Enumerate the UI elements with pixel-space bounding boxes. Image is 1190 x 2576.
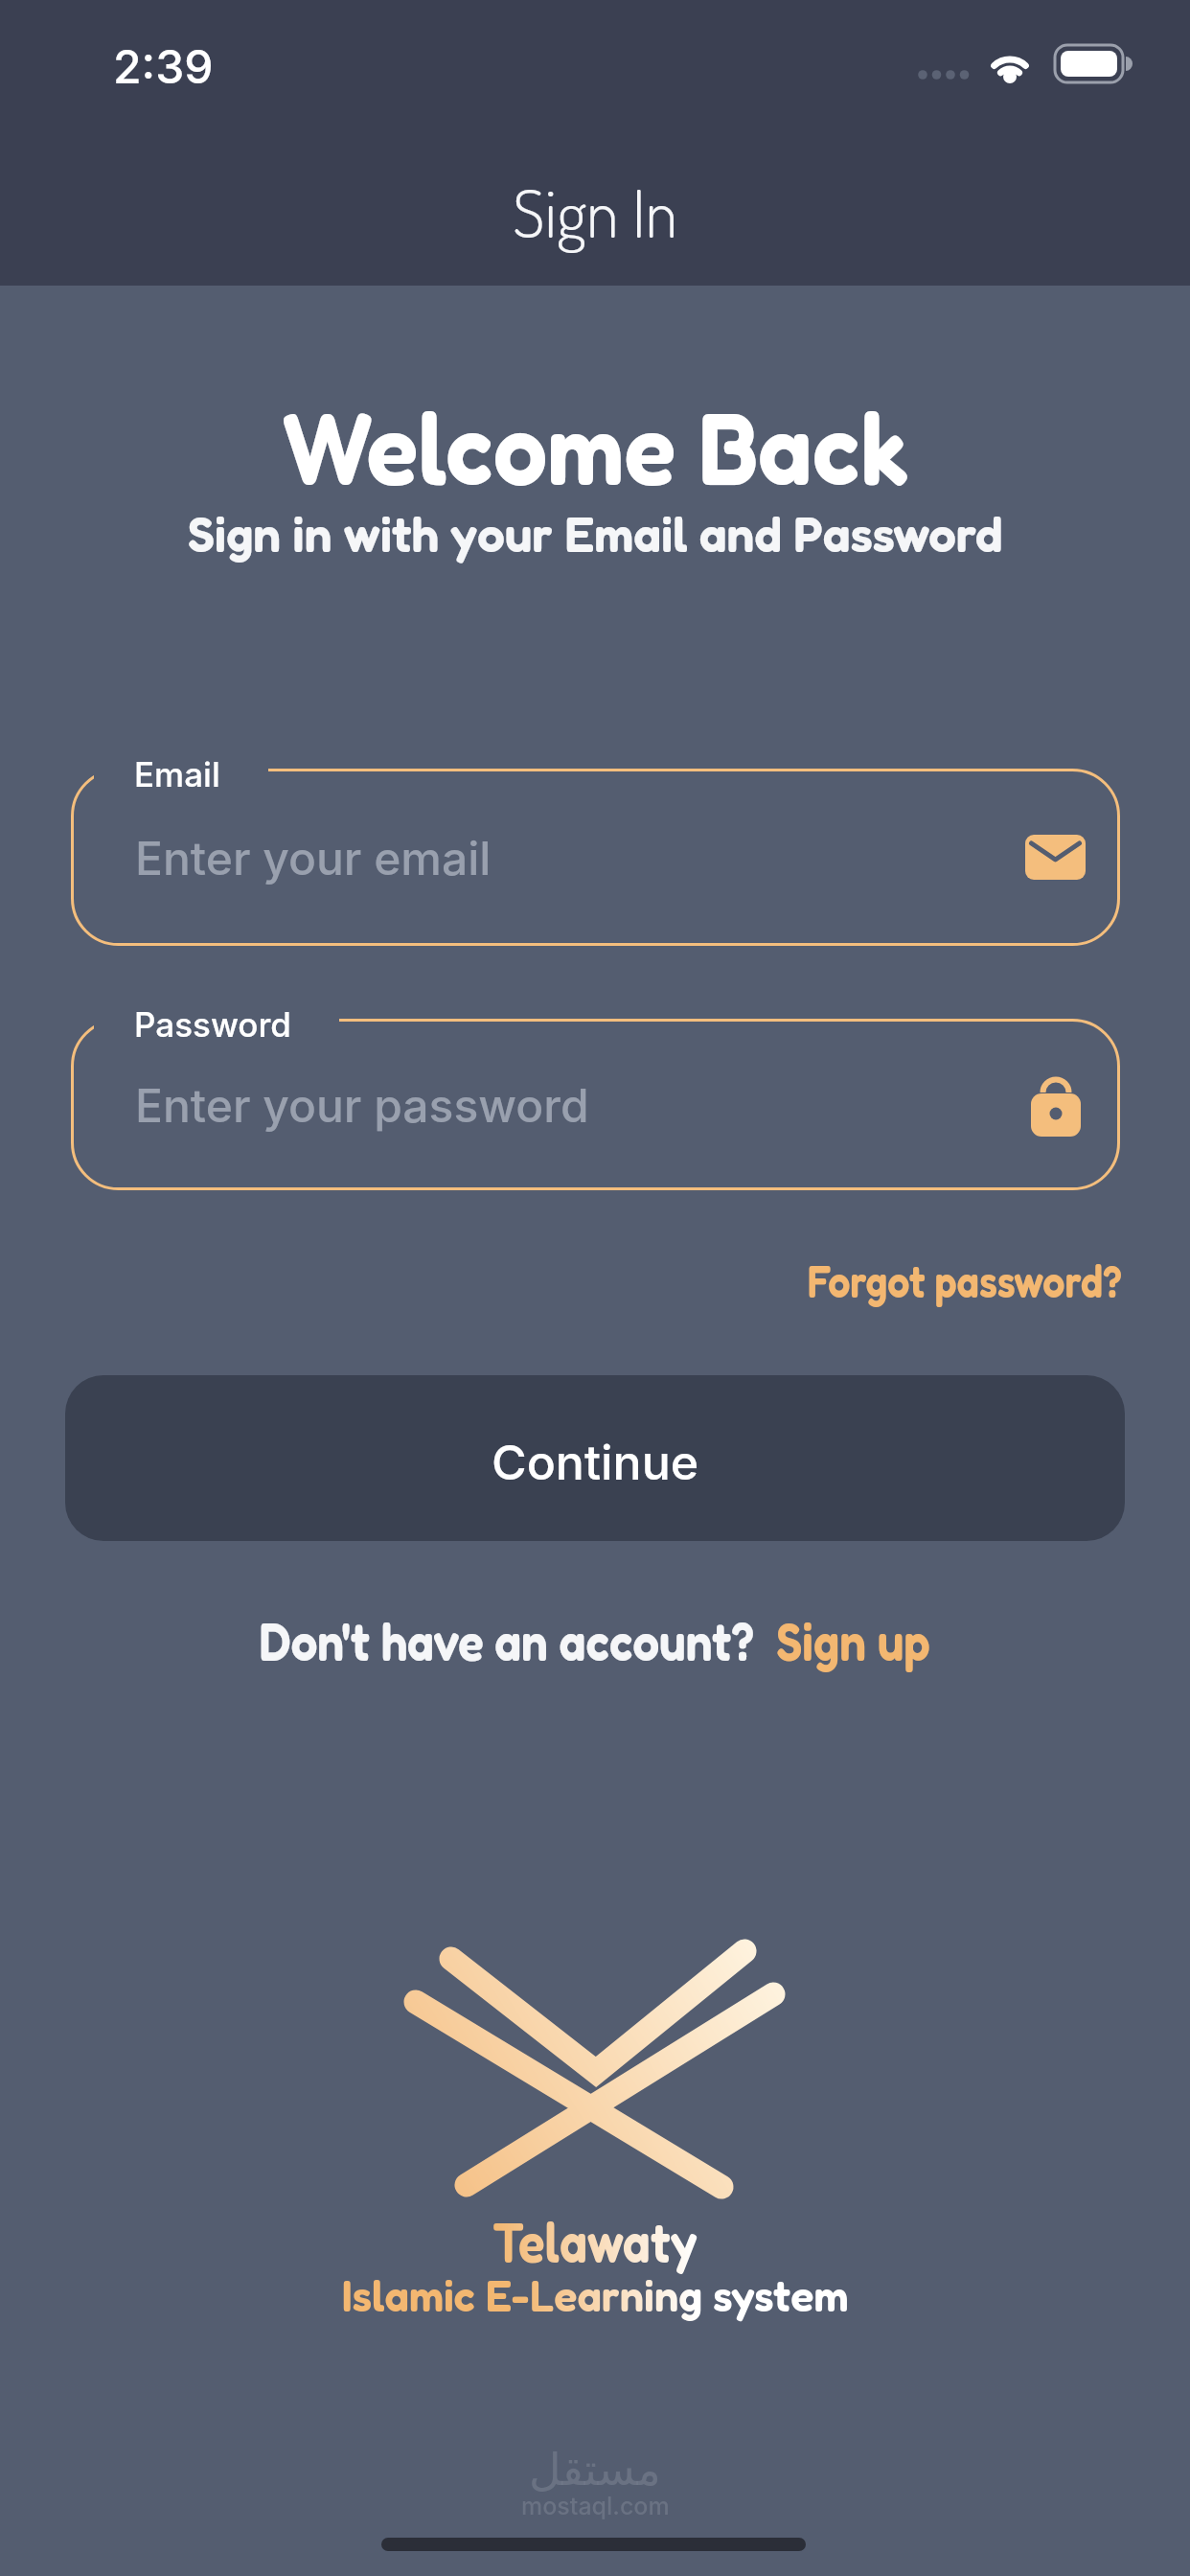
button[interactable]: Forgot password? (807, 1253, 1122, 1308)
button[interactable]: Sign up (776, 1608, 931, 1673)
staticText: Don't have an account? (259, 1608, 754, 1673)
staticText: Welcome Back (282, 385, 909, 508)
staticText: مستقل (529, 2444, 661, 2495)
staticText: Telawaty (492, 2208, 698, 2274)
button[interactable]: Email (71, 769, 1120, 946)
staticText: Email (134, 754, 220, 794)
staticText: Sign up (776, 1608, 931, 1673)
staticText: Forgot password? (807, 1253, 1122, 1308)
button[interactable]: Continue (65, 1375, 1125, 1541)
staticText: Sign in with your Email and Password (188, 504, 1003, 563)
staticText: Enter your password (135, 1077, 589, 1133)
staticText: mostaql.com (521, 2492, 670, 2520)
staticText: Password (134, 1004, 291, 1045)
staticText: Continue (492, 1434, 699, 1491)
staticText: Enter your email (135, 830, 492, 885)
button[interactable]: Password (71, 1019, 1120, 1190)
staticText: 2:39 (113, 38, 214, 94)
staticText: Sign In (513, 170, 678, 253)
staticText: Islamic E-Learning system (342, 2269, 849, 2321)
